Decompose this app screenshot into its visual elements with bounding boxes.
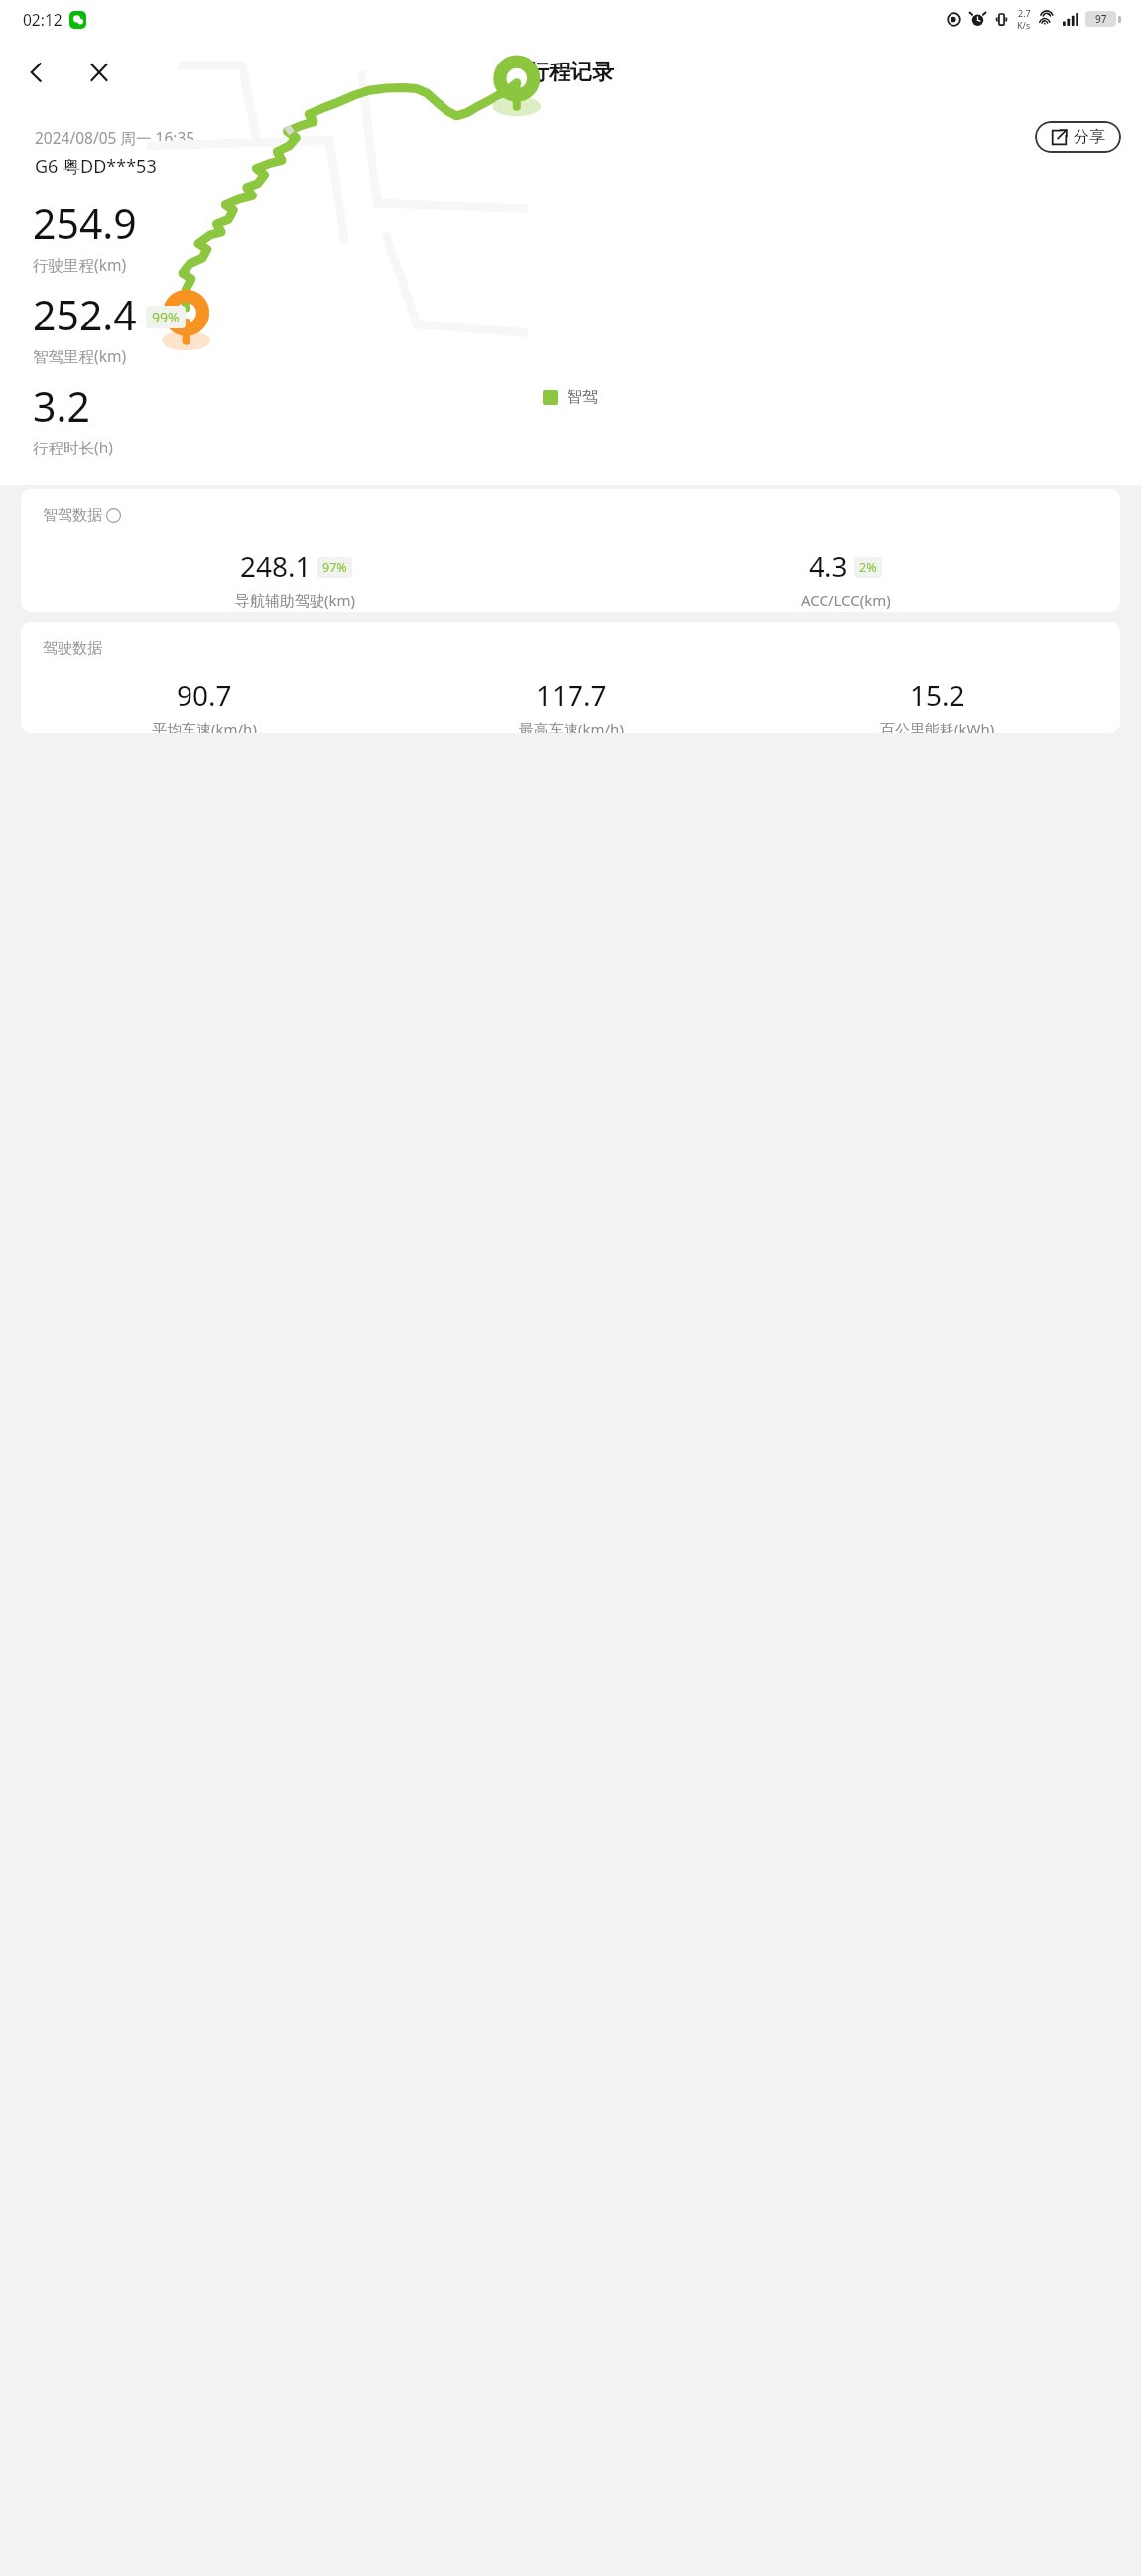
button[interactable]: Close <box>72 46 126 99</box>
button[interactable]: 90.7 <box>21 676 388 733</box>
staticText: 驾驶数据 <box>43 639 102 658</box>
staticText: 15.2 <box>910 676 965 713</box>
staticText: K/s <box>1017 19 1031 31</box>
staticText: 导航辅助驾驶(km) <box>235 590 356 610</box>
staticText: 3.2 <box>33 378 90 434</box>
staticText: 行程时长(h) <box>33 437 113 457</box>
staticText: 99% <box>152 308 180 326</box>
staticText: 行程记录 <box>527 59 614 86</box>
staticText: 97 <box>1095 12 1107 26</box>
staticText: 248.1 <box>240 547 312 584</box>
staticText: 117.7 <box>536 676 607 713</box>
staticText: 02:12 <box>23 9 63 30</box>
button[interactable]: Back <box>10 46 63 99</box>
staticText: 智驾数据 <box>43 506 102 525</box>
button[interactable]: 248.1 <box>21 547 570 610</box>
button[interactable]: 4.3 <box>570 547 1120 610</box>
staticText: 行驶里程(km) <box>33 254 127 275</box>
staticText: 254.9 <box>33 195 137 251</box>
staticText: 2% <box>859 559 877 576</box>
staticText: 252.4 <box>33 287 137 342</box>
staticText: 智驾里程(km) <box>33 345 127 366</box>
button[interactable]: 15.2 <box>754 676 1120 733</box>
staticText: 百公里能耗(kWh) <box>880 719 995 733</box>
staticText: 2024/08/05 周一 16:35 <box>35 127 195 148</box>
staticText: 最高车速(km/h) <box>519 719 624 733</box>
button[interactable]: 117.7 <box>388 676 754 733</box>
staticText: ACC/LCC(km) <box>801 590 891 610</box>
staticText: 分享 <box>1074 127 1105 147</box>
staticText: 4.3 <box>809 547 848 584</box>
button[interactable]: 分享 <box>1035 121 1121 153</box>
staticText: 平均车速(km/h) <box>152 719 257 733</box>
staticText: 2.7 <box>1018 7 1031 19</box>
staticText: 97% <box>322 559 347 576</box>
staticText: 90.7 <box>177 676 232 713</box>
staticText: 智驾 <box>567 387 598 407</box>
staticText: G6 粤DD***53 <box>35 154 157 179</box>
